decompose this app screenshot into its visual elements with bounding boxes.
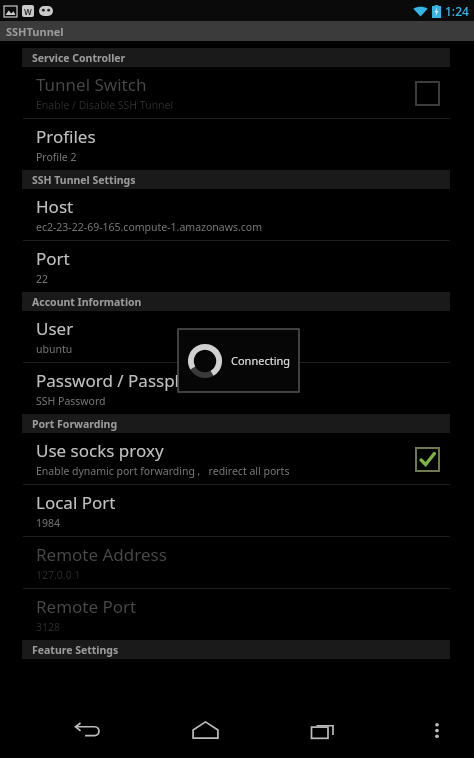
button[interactable]: Port xyxy=(22,241,450,292)
staticText: Connecting xyxy=(231,353,291,368)
staticText: 3128 xyxy=(36,620,61,634)
staticText: Password / Passphrase xyxy=(36,369,220,392)
button[interactable]: Profiles xyxy=(22,119,450,170)
staticText: Local Port xyxy=(36,491,116,514)
staticText: 1:24 xyxy=(445,3,469,19)
staticText: Service Controller xyxy=(32,51,126,65)
button[interactable]: Unchecked xyxy=(414,80,440,106)
staticText: SSHTunnel xyxy=(6,24,64,39)
button[interactable]: Home xyxy=(181,706,229,754)
staticText: 1984 xyxy=(36,516,61,530)
staticText: Port Forwarding xyxy=(32,417,118,431)
button[interactable]: More options xyxy=(417,710,457,750)
staticText: Enable / Disable SSH Tunnel xyxy=(36,98,174,112)
staticText: 127.0.0.1 xyxy=(36,568,81,582)
button[interactable]: Tunnel Switch xyxy=(22,67,450,118)
button[interactable]: Back xyxy=(63,706,111,754)
button[interactable]: Checked xyxy=(414,446,440,472)
button[interactable]: User xyxy=(22,311,450,362)
staticText: Feature Settings xyxy=(32,643,119,657)
staticText: Profile 2 xyxy=(36,150,77,164)
button[interactable]: Remote Address xyxy=(22,537,450,588)
staticText: Profiles xyxy=(36,125,96,148)
staticText: ubuntu xyxy=(36,342,73,356)
staticText: 22 xyxy=(36,272,49,286)
button[interactable]: SSHTunnel xyxy=(0,21,474,41)
staticText: Host xyxy=(36,195,74,218)
staticText: Tunnel Switch xyxy=(36,73,147,96)
staticText: Account Information xyxy=(32,295,142,309)
button[interactable]: Local Port xyxy=(22,485,450,536)
staticText: Enable dynamic port forwarding , redirec… xyxy=(36,464,290,478)
staticText: ec2-23-22-69-165.compute-1.amazonaws.com xyxy=(36,220,263,234)
button[interactable]: Connecting xyxy=(178,329,299,392)
button[interactable]: Host xyxy=(22,189,450,240)
button[interactable]: Use socks proxy xyxy=(22,433,450,484)
staticText: Remote Address xyxy=(36,543,167,566)
staticText: SSH Password xyxy=(36,394,106,408)
staticText: SSH Tunnel Settings xyxy=(32,173,136,187)
button[interactable]: Recent apps xyxy=(299,706,347,754)
staticText: Use socks proxy xyxy=(36,439,164,462)
staticText: Remote Port xyxy=(36,595,137,618)
staticText: Port xyxy=(36,247,70,270)
staticText: W xyxy=(24,6,32,17)
staticText: User xyxy=(36,317,74,340)
button[interactable]: Password / Passphrase xyxy=(22,363,450,414)
button[interactable]: Remote Port xyxy=(22,589,450,640)
